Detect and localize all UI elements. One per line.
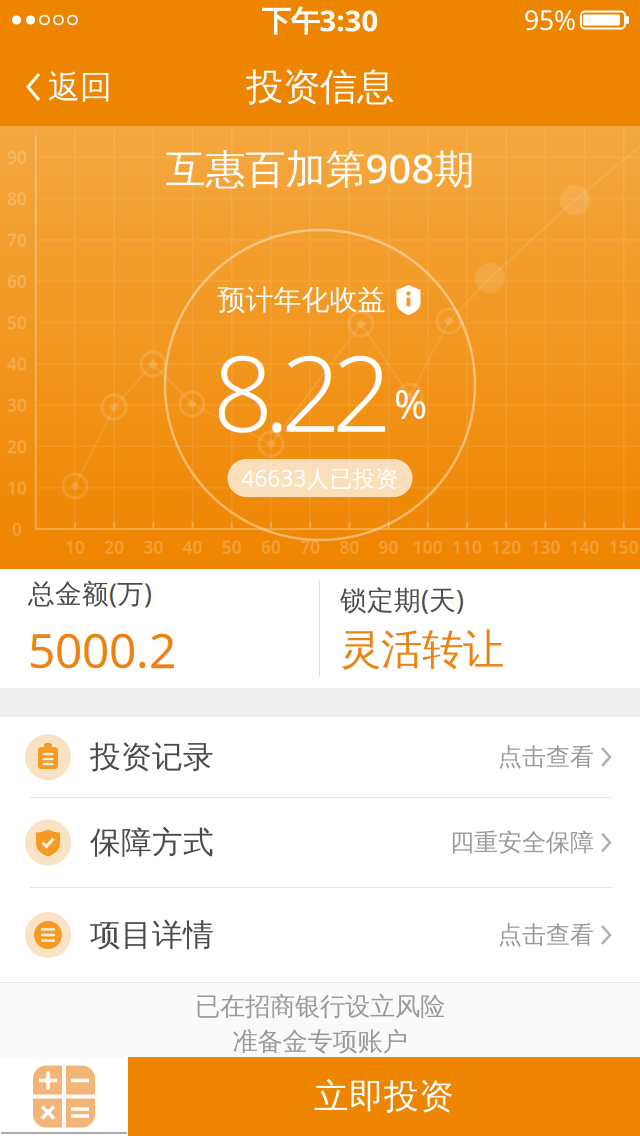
staticText: 下午3:30 [261,0,378,39]
staticText: 互惠百加第908期 [165,141,474,194]
staticText: 40 [7,352,27,375]
staticText: 立即投资 [314,1075,454,1118]
staticText: 投资信息 [246,64,394,110]
staticText: 110 [452,535,482,558]
staticText: 30 [143,535,163,558]
staticText: 准备金专项账户 [232,1026,407,1057]
staticText: 60 [7,270,27,293]
button[interactable]: 立即投资 [128,1057,640,1136]
staticText: 80 [339,535,359,558]
staticText: 60 [261,535,281,558]
staticText: 5000.2 [28,618,176,681]
staticText: 已在招商银行设立风险 [195,991,445,1022]
staticText: 120 [491,535,521,558]
staticText: 40 [183,535,203,558]
staticText: 锁定期(天) [340,582,464,617]
staticText: 95% [524,2,576,38]
button[interactable]: 项目详情 [0,888,640,982]
staticText: 20 [7,435,27,458]
button[interactable]: 投资记录 [0,717,640,797]
staticText: 10 [7,476,27,499]
staticText: 30 [7,394,27,417]
staticText: 140 [570,535,600,558]
staticText: 点击查看 [498,920,594,950]
button[interactable]: 保障方式 [0,798,640,887]
staticText: 投资记录 [90,738,214,776]
staticText: 50 [222,535,242,558]
staticText: 灵活转让 [340,624,504,675]
staticText: 0 [12,517,22,540]
staticText: 130 [530,535,560,558]
staticText: 20 [104,535,124,558]
staticText: 70 [300,535,320,558]
staticText: 10 [65,535,85,558]
staticText: 46633人已投资 [241,463,398,493]
staticText: 保障方式 [90,824,214,861]
staticText: 点击查看 [498,742,594,772]
staticText: 50 [7,311,27,334]
staticText: 8.22 [213,321,392,461]
staticText: 四重安全保障 [450,828,594,857]
staticText: 总金额(万) [28,575,152,611]
staticText: 项目详情 [90,916,214,954]
staticText: 150 [609,535,639,558]
button[interactable]: 返回 [0,53,112,113]
staticText: 80 [7,187,27,210]
staticText: 预计年化收益 [217,283,385,317]
staticText: 70 [7,228,27,251]
staticText: 90 [379,535,399,558]
staticText: 90 [7,146,27,169]
staticText: 100 [413,535,443,558]
staticText: % [394,377,427,430]
button[interactable]: 收益计算器 [0,1057,128,1136]
staticText: 返回 [48,67,112,107]
